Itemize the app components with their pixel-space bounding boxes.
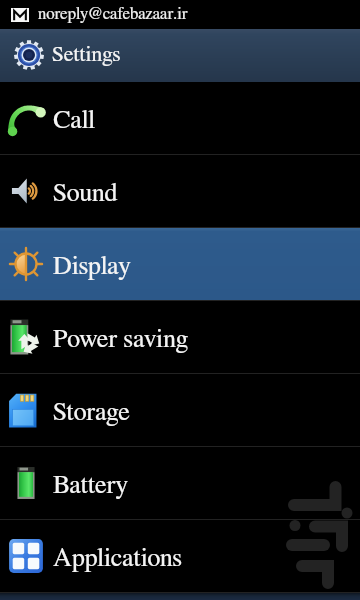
button[interactable]: Sound xyxy=(0,155,360,227)
button[interactable]: Settings xyxy=(0,29,360,82)
staticText: Power saving xyxy=(53,326,188,352)
staticText: Settings xyxy=(52,43,121,65)
button[interactable]: Call xyxy=(0,82,360,154)
button[interactable]: Battery xyxy=(0,447,360,519)
button[interactable]: Power saving xyxy=(0,301,360,373)
other: Gmail notification xyxy=(11,8,29,22)
staticText: Display xyxy=(53,253,131,279)
staticText: noreply@cafebazaar.ir xyxy=(38,5,188,22)
staticText: Applications xyxy=(53,545,183,571)
button[interactable]: Applications xyxy=(0,520,360,592)
button[interactable]: Storage xyxy=(0,374,360,446)
staticText: Storage xyxy=(53,399,130,425)
button[interactable]: Display xyxy=(0,228,360,300)
staticText: Call xyxy=(53,107,96,133)
staticText: Battery xyxy=(53,472,128,498)
staticText: Sound xyxy=(53,180,118,206)
